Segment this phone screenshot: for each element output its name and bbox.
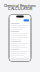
button[interactable]: Your message <box>24 19 29 21</box>
staticText: Chemical Reactions <box>4 4 36 8</box>
staticText: CALCULATOR <box>8 7 32 11</box>
